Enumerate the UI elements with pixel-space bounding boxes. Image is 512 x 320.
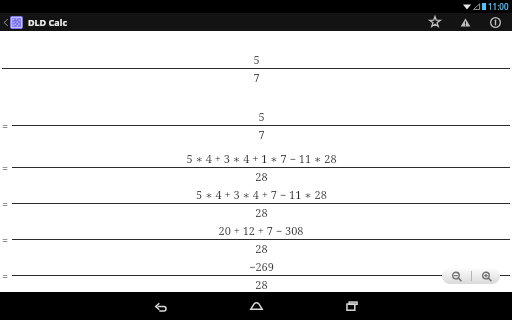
- button[interactable]: Home: [222, 292, 290, 320]
- button[interactable]: Zoom in: [472, 268, 500, 284]
- staticText: 28: [255, 205, 268, 220]
- staticText: DLD Calc: [28, 16, 68, 28]
- staticText: 11:00: [488, 1, 509, 12]
- staticText: 7: [253, 70, 260, 85]
- staticText: 7: [258, 127, 265, 142]
- staticText: =: [0, 232, 10, 247]
- button[interactable]: Up: [0, 16, 23, 29]
- staticText: =: [0, 118, 10, 133]
- staticText: =: [0, 160, 10, 175]
- staticText: 5 ∗ 4 + 3 ∗ 4 + 7 − 11 ∗ 28: [196, 187, 327, 202]
- staticText: =: [0, 268, 10, 283]
- staticText: 28: [255, 241, 268, 256]
- staticText: 28: [255, 277, 268, 292]
- staticText: 5 ∗ 4 + 3 ∗ 4 + 1 ∗ 7 − 11 ∗ 28: [186, 151, 337, 166]
- button[interactable]: Warnings: [450, 13, 480, 31]
- staticText: 28: [255, 169, 268, 184]
- staticText: −269: [249, 259, 274, 274]
- staticText: 20 + 12 + 7 − 308: [218, 223, 304, 238]
- button[interactable]: Zoom out: [442, 268, 471, 284]
- staticText: 5: [258, 109, 265, 124]
- button[interactable]: Back: [126, 292, 194, 320]
- staticText: 5: [253, 52, 260, 67]
- button[interactable]: Recents: [318, 292, 386, 320]
- button[interactable]: Favorite: [420, 13, 450, 31]
- staticText: =: [0, 196, 10, 211]
- button[interactable]: Info: [480, 13, 510, 31]
